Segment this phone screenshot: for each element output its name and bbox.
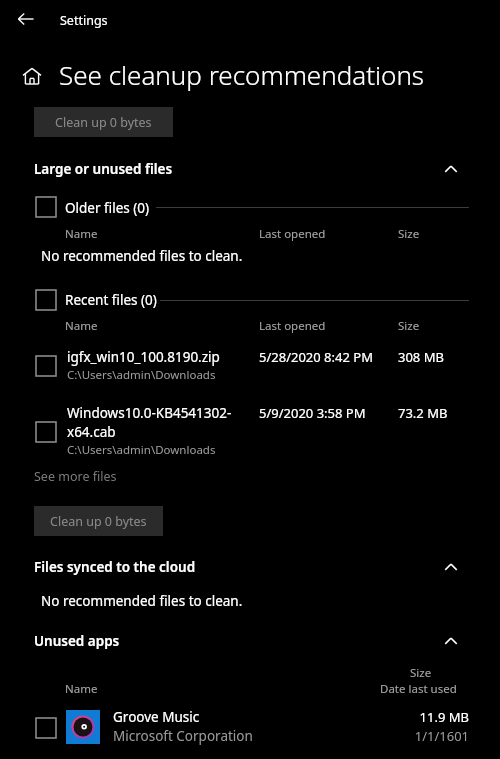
staticText: Windows10.0-KB4541302- bbox=[67, 404, 232, 422]
staticText: 5/28/2020 8:42 PM bbox=[259, 348, 373, 366]
button[interactable]: Files synced to the cloud bbox=[0, 552, 500, 582]
staticText: Size bbox=[410, 665, 432, 681]
button[interactable]: Select bbox=[0, 705, 500, 751]
staticText: Files synced to the cloud bbox=[34, 558, 196, 576]
staticText: C:\Users\admin\Downloads bbox=[67, 367, 216, 383]
staticText: Name bbox=[65, 226, 98, 242]
staticText: Last opened bbox=[259, 318, 326, 334]
staticText: See cleanup recommendations bbox=[59, 57, 425, 92]
button[interactable]: Select bbox=[36, 718, 56, 738]
staticText: 11.9 MB bbox=[369, 708, 469, 726]
staticText: 73.2 MB bbox=[398, 404, 448, 422]
button[interactable]: Collapse section bbox=[436, 552, 466, 582]
button[interactable]: Select bbox=[36, 290, 56, 310]
staticText: Clean up 0 bytes bbox=[55, 114, 152, 131]
button[interactable]: Select bbox=[36, 422, 56, 442]
staticText: Size bbox=[398, 226, 420, 242]
staticText: C:\Users\admin\Downloads bbox=[67, 442, 216, 458]
staticText: 5/9/2020 3:58 PM bbox=[259, 404, 366, 422]
button[interactable]: Clean up 0 bytes bbox=[34, 107, 173, 137]
button[interactable]: Large or unused files bbox=[0, 154, 500, 184]
staticText: 1/1/1601 bbox=[369, 727, 469, 745]
button[interactable]: Select bbox=[36, 356, 56, 376]
button[interactable]: Select bbox=[0, 404, 500, 462]
staticText: No recommended files to clean. bbox=[41, 592, 243, 610]
staticText: x64.cab bbox=[67, 423, 116, 441]
staticText: No recommended files to clean. bbox=[41, 247, 243, 265]
staticText: Last opened bbox=[259, 226, 326, 242]
staticText: Date last used bbox=[380, 681, 457, 697]
button[interactable]: Select bbox=[36, 197, 56, 217]
button[interactable]: Back bbox=[6, 4, 46, 34]
button[interactable]: Collapse section bbox=[436, 626, 466, 656]
button[interactable]: Clean up 0 bytes bbox=[34, 506, 163, 536]
staticText: Unused apps bbox=[34, 632, 120, 650]
button[interactable]: Unused apps bbox=[0, 626, 500, 656]
staticText: Name bbox=[65, 681, 98, 697]
staticText: Older files (0) bbox=[65, 199, 150, 217]
staticText: Clean up 0 bytes bbox=[50, 513, 147, 530]
button[interactable]: Home bbox=[16, 60, 48, 92]
button[interactable]: Collapse section bbox=[436, 154, 466, 184]
staticText: Settings bbox=[60, 12, 108, 29]
staticText: Size bbox=[398, 318, 420, 334]
staticText: igfx_win10_100.8190.zip bbox=[67, 348, 220, 366]
staticText: Groove Music bbox=[113, 708, 200, 726]
staticText: See more files bbox=[34, 468, 117, 485]
staticText: Large or unused files bbox=[34, 160, 173, 178]
button[interactable]: See more files bbox=[34, 466, 117, 486]
staticText: Recent files (0) bbox=[65, 291, 157, 309]
staticText: Name bbox=[65, 318, 98, 334]
staticText: Microsoft Corporation bbox=[113, 727, 253, 745]
button[interactable]: Select bbox=[0, 348, 500, 388]
staticText: 308 MB bbox=[398, 348, 444, 366]
